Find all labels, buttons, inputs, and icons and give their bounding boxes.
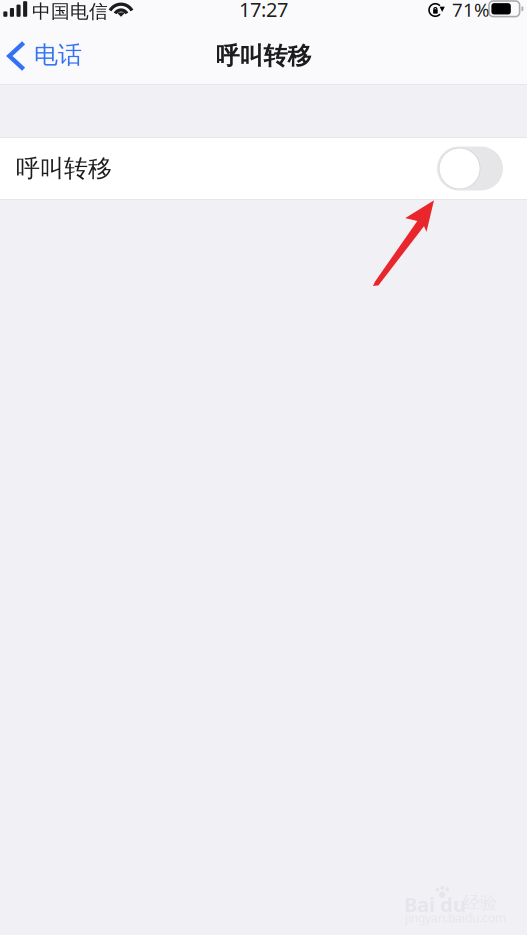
- staticText: 经验: [463, 892, 497, 913]
- staticText: 17:27: [239, 0, 288, 23]
- button[interactable]: 返回 电话: [0, 34, 92, 78]
- button[interactable]: 呼叫转移: [0, 137, 527, 200]
- staticText: 呼叫转移: [16, 154, 112, 183]
- staticText: 呼叫转移: [215, 41, 311, 71]
- staticText: Bai du: [404, 891, 466, 918]
- staticText: 71%: [452, 0, 490, 22]
- staticText: jingyan.baidu.com: [405, 910, 506, 926]
- staticText: 电话: [34, 40, 82, 70]
- staticText: 中国电信: [32, 0, 108, 23]
